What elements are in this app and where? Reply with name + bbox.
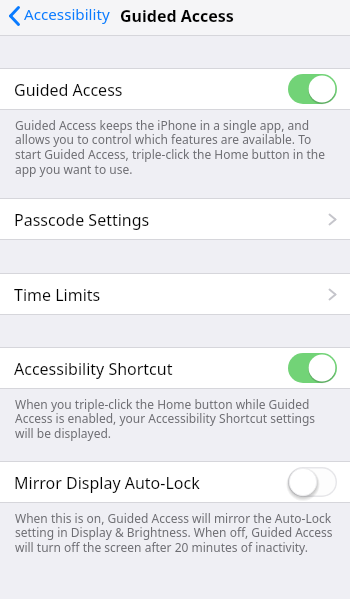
staticText: Guided Access keeps the iPhone in a sing… [15,117,335,178]
button[interactable]: Time Limits [0,274,350,314]
button[interactable]: Mirror Display Auto-Lock [0,462,350,502]
staticText: When this is on, Guided Access will mirr… [15,510,335,556]
button[interactable]: Accessibility Shortcut, on [288,353,337,383]
staticText: Time Limits [14,284,101,306]
button[interactable]: Passcode Settings [0,199,350,239]
staticText: Guided Access [14,79,123,101]
button[interactable]: Back to Accessibility [0,4,116,31]
staticText: When you triple-click the Home button wh… [15,396,335,442]
staticText: Passcode Settings [14,209,150,231]
button[interactable]: Guided Access, on [288,74,337,104]
button[interactable]: Guided Access [0,69,350,109]
staticText: Guided Access [120,5,234,27]
staticText: Mirror Display Auto-Lock [14,472,200,494]
staticText: Accessibility Shortcut [14,358,173,380]
other: Back to Accessibility [9,6,20,26]
staticText: Accessibility [24,4,110,25]
button[interactable]: Mirror Display Auto-Lock, off [288,467,337,497]
button[interactable]: Accessibility Shortcut [0,348,350,388]
